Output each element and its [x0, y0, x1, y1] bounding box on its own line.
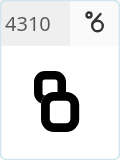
button[interactable]: 4310: [0, 0, 70, 46]
staticText: 4310: [5, 10, 51, 37]
button[interactable]: Duplicate: [0, 0, 120, 160]
button[interactable]: Percent: [70, 0, 120, 46]
